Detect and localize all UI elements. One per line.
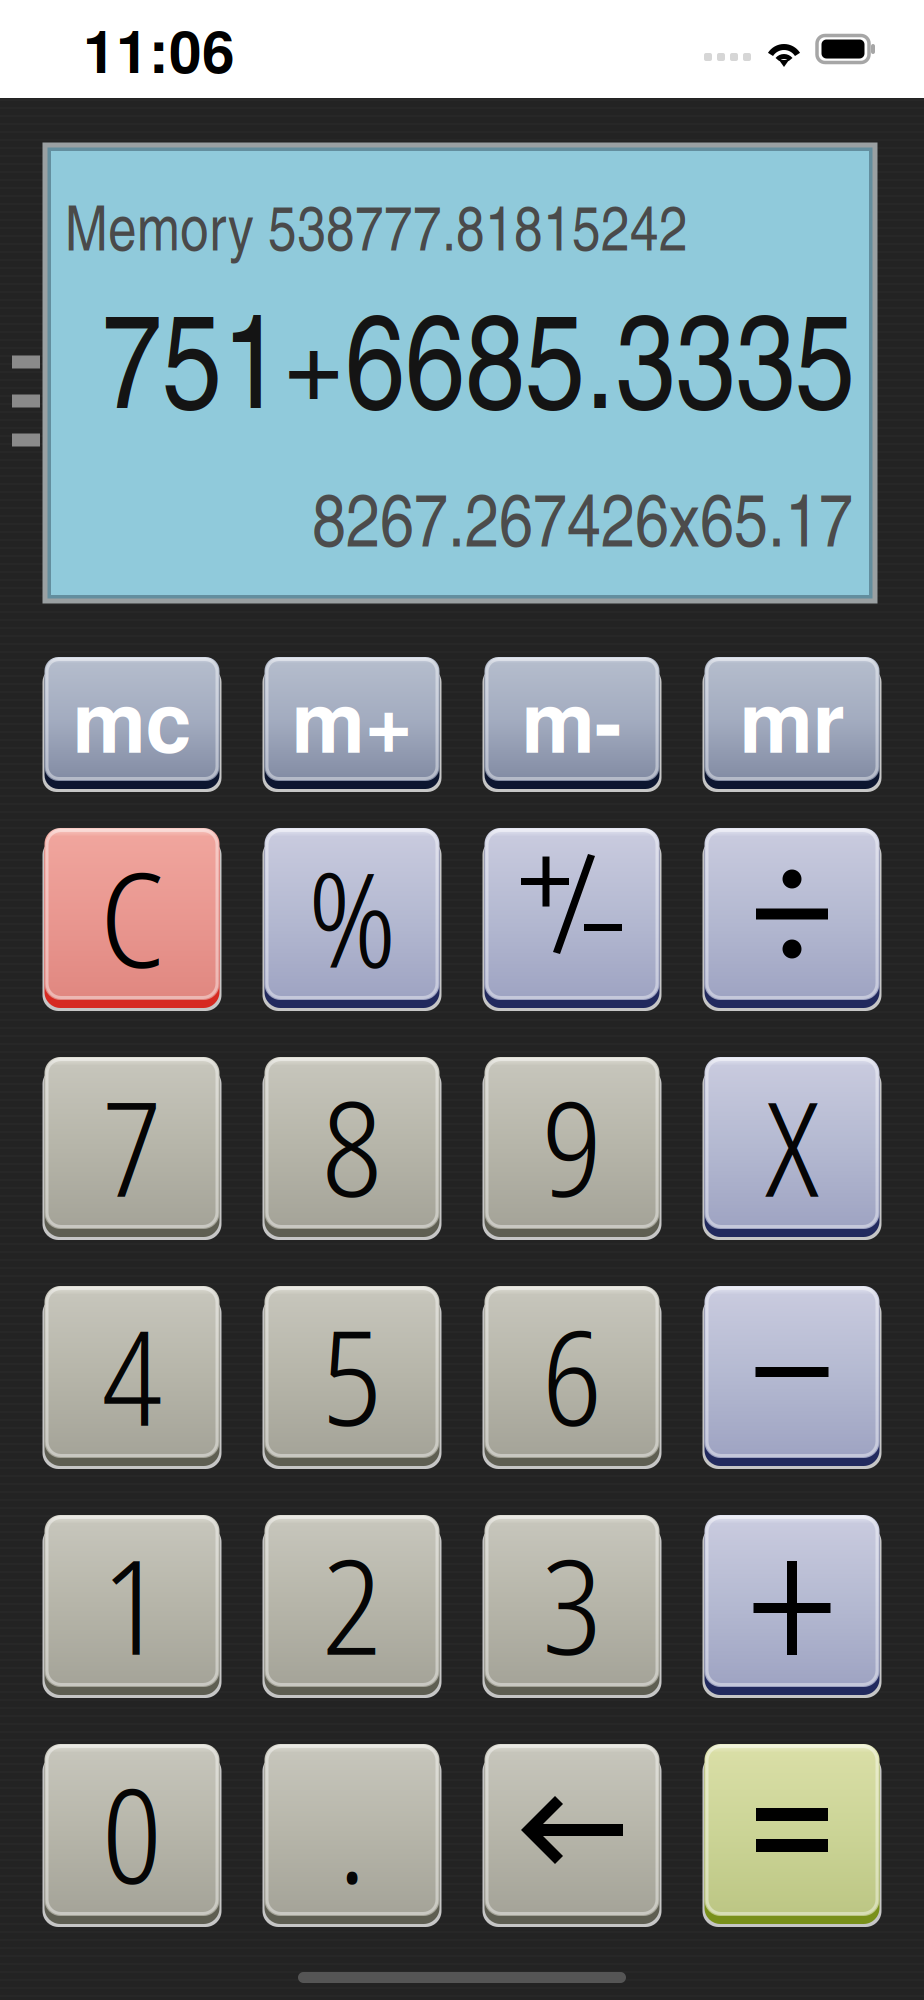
button[interactable]: 8 — [261, 1050, 442, 1236]
button[interactable]: % — [261, 821, 442, 1007]
button[interactable]: mc — [41, 650, 222, 788]
staticText: 751+6685.3335 — [102, 264, 855, 445]
staticText: C — [100, 828, 164, 1006]
button[interactable]: 9 — [481, 1050, 662, 1236]
button[interactable]: 6 — [481, 1279, 662, 1465]
button[interactable]: 2 — [261, 1508, 442, 1694]
staticText: 11:06 — [83, 7, 235, 91]
staticText: 2 — [322, 1515, 382, 1693]
button[interactable]: plus — [701, 1508, 882, 1694]
staticText: mc — [72, 660, 191, 778]
staticText: 6 — [542, 1286, 602, 1464]
button[interactable]: 4 — [41, 1279, 222, 1465]
button[interactable]: 7 — [41, 1050, 222, 1236]
staticText: 9 — [542, 1057, 602, 1235]
staticText: . — [338, 1744, 366, 1922]
button[interactable]: backspace — [481, 1737, 662, 1923]
button[interactable]: 5 — [261, 1279, 442, 1465]
staticText: mr — [739, 660, 844, 778]
button[interactable]: mr — [701, 650, 882, 788]
button[interactable]: decimal point — [261, 1737, 442, 1923]
staticText: X — [764, 1057, 819, 1235]
staticText: 8267.267426x65.17 — [312, 465, 853, 568]
staticText: 3 — [542, 1515, 602, 1693]
staticText: m+ — [291, 660, 412, 778]
staticText: 5 — [322, 1286, 382, 1464]
button[interactable]: minus — [701, 1279, 882, 1465]
staticText: 0 — [102, 1744, 162, 1922]
staticText: 1 — [102, 1515, 162, 1693]
button[interactable]: m+ — [261, 650, 442, 788]
staticText: 8 — [322, 1057, 382, 1235]
staticText: % — [308, 828, 396, 1006]
staticText: 4 — [102, 1286, 162, 1464]
button[interactable]: divide — [701, 821, 882, 1007]
button[interactable]: 1 — [41, 1508, 222, 1694]
button[interactable]: multiply — [701, 1050, 882, 1236]
button[interactable]: 3 — [481, 1508, 662, 1694]
button[interactable]: m- — [481, 650, 662, 788]
button[interactable]: equals — [701, 1737, 882, 1923]
staticText: 7 — [102, 1057, 162, 1235]
staticText: m- — [521, 660, 622, 778]
button[interactable]: C — [41, 821, 222, 1007]
button[interactable]: 0 — [41, 1737, 222, 1923]
button[interactable]: plus minus — [481, 821, 662, 1007]
staticText: Memory 538777.81815242 — [65, 182, 688, 268]
